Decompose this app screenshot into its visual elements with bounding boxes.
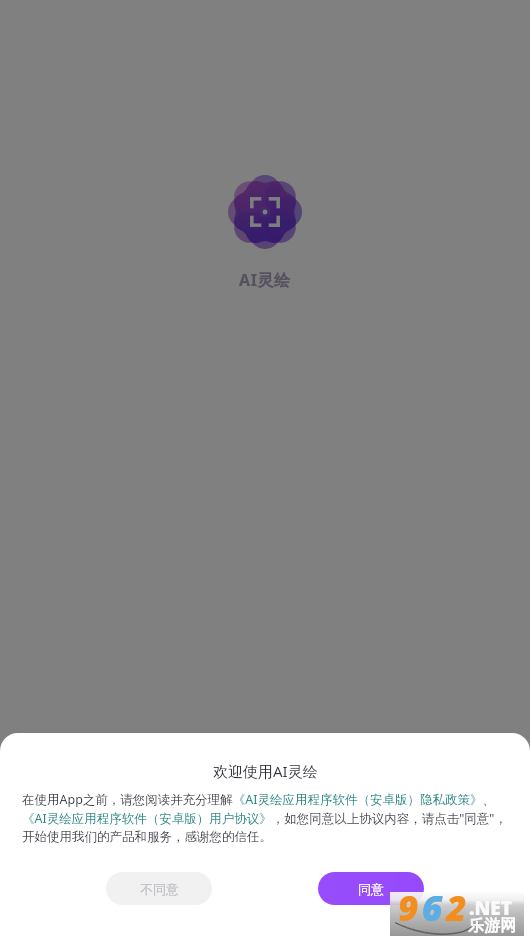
staticText: .NET	[469, 895, 512, 921]
staticText: AI灵绘	[239, 269, 291, 291]
staticText: 6	[422, 884, 447, 928]
button[interactable]: 同意	[318, 872, 424, 905]
button[interactable]: 《AI灵绘应用程序软件（安卓版）用户协议》	[22, 812, 270, 827]
button[interactable]: 不同意	[106, 872, 212, 905]
other: AI灵绘 app logo	[228, 175, 302, 249]
staticText: 962	[398, 884, 471, 928]
staticText: 欢迎使用AI灵绘	[213, 761, 318, 781]
button[interactable]: 《AI灵绘应用程序软件（安卓版）隐私政策》	[238, 793, 486, 808]
staticText: 在使用App之前，请您阅读并充分理解《AI灵绘应用程序软件（安卓版）隐私政策》、…	[22, 791, 508, 845]
staticText: 不同意	[140, 881, 179, 897]
staticText: 乐游网	[468, 916, 516, 936]
staticText: 同意	[358, 881, 384, 897]
